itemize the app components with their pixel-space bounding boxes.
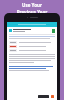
button[interactable] [9,41,55,44]
button[interactable]: Open [51,95,54,98]
button[interactable]: App icon [9,28,55,33]
staticText: Previous Year Questions(PYQ) [0,9,64,21]
button[interactable] [9,45,55,48]
button[interactable] [7,22,57,27]
button[interactable] [9,49,55,52]
staticText: Use Your [22,2,42,8]
button[interactable]: Primary action [38,95,49,98]
